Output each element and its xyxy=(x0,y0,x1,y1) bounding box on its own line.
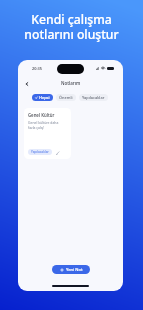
button[interactable]: Hepsi xyxy=(32,94,53,101)
button[interactable]: Back xyxy=(22,79,31,88)
staticText: Kendi çalışma notlarını oluştur xyxy=(0,11,143,43)
button[interactable]: Edit note xyxy=(55,150,60,155)
staticText: Yapılacaklar xyxy=(31,150,49,154)
button[interactable]: Genel Kültür xyxy=(24,108,71,159)
button[interactable]: Yeni Not xyxy=(52,265,90,274)
staticText: Notlarım xyxy=(61,80,81,86)
staticText: Genel kültüre daha fazla çalış! xyxy=(28,120,59,130)
staticText: Yeni Not xyxy=(66,267,83,273)
button[interactable]: Önemli xyxy=(56,94,76,101)
staticText: Hepsi xyxy=(39,95,50,100)
staticText: Genel Kültür xyxy=(28,112,55,118)
staticText: Yapılacaklar xyxy=(82,95,105,100)
button[interactable]: Yapılacaklar xyxy=(79,94,108,101)
staticText: 20:35 xyxy=(32,66,42,71)
staticText: Önemli xyxy=(59,95,73,100)
